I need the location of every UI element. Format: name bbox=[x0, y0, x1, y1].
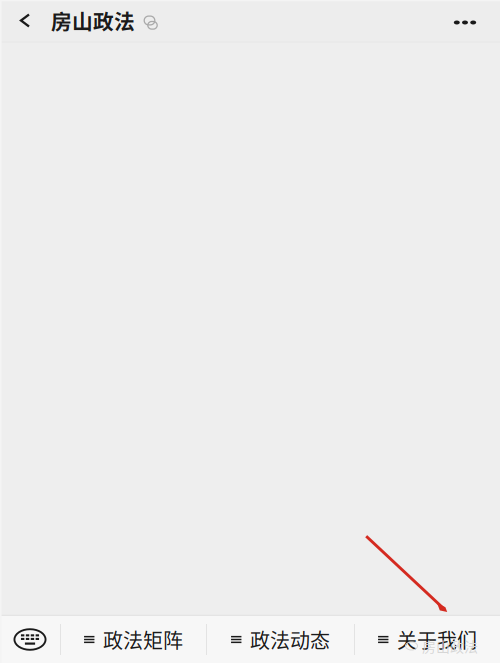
staticText: 政法动态 bbox=[250, 625, 330, 654]
staticText: 关于我们 bbox=[397, 625, 477, 654]
button[interactable]: 政法矩阵 bbox=[61, 615, 206, 663]
staticText: 政法矩阵 bbox=[103, 625, 183, 654]
button[interactable]: 政法动态 bbox=[207, 615, 354, 663]
button[interactable]: Back bbox=[10, 0, 40, 41]
staticText: 房山政法 bbox=[51, 5, 135, 35]
staticText: 房山政法 bbox=[422, 636, 478, 656]
button[interactable]: Keyboard bbox=[0, 615, 60, 663]
button[interactable]: 关于我们 bbox=[355, 615, 500, 663]
button[interactable]: More bbox=[438, 0, 492, 41]
